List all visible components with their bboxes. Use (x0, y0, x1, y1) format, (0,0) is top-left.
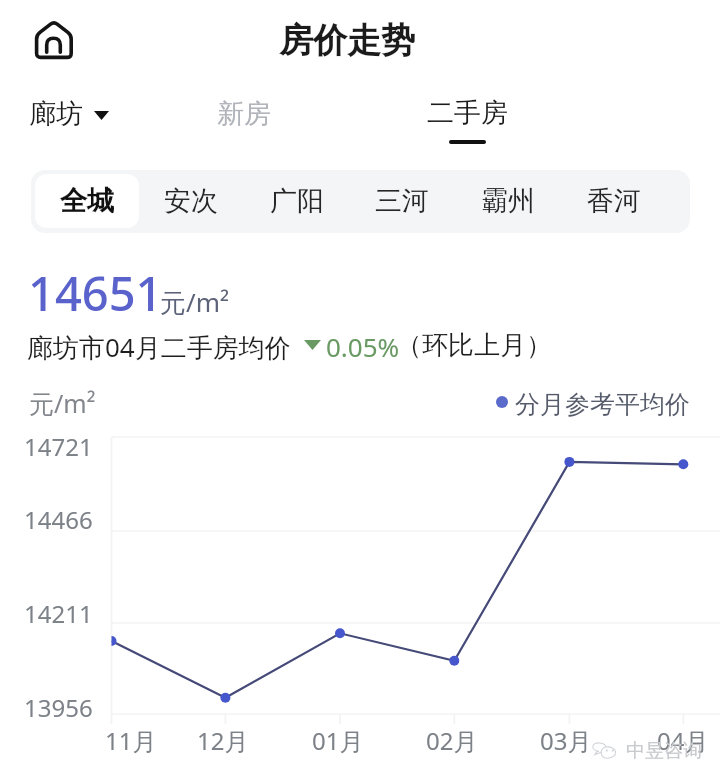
staticText: 房价走势 (279, 19, 415, 62)
staticText: 全城 (60, 184, 114, 218)
staticText: 分月参考平均价 (515, 389, 690, 420)
staticText: 二手房 (427, 96, 508, 130)
staticText: 安次 (164, 184, 218, 218)
staticText: 廊坊市04月二手房均价 (27, 329, 291, 365)
button[interactable]: 广阳 (245, 174, 349, 228)
staticText: 13956 (24, 691, 93, 724)
staticText: 广阳 (270, 184, 324, 218)
staticText: 元/m² (160, 284, 230, 320)
staticText: 中昱咨询 (626, 739, 702, 763)
staticText: 12月 (197, 724, 249, 757)
staticText: 香河 (587, 184, 641, 218)
button[interactable]: Home (18, 4, 90, 76)
button[interactable]: 新房 (217, 96, 277, 146)
staticText: 廊坊 (29, 97, 83, 131)
staticText: （环比上月） (396, 329, 552, 362)
staticText: 04月 (657, 724, 709, 757)
button[interactable]: 廊坊 (29, 96, 111, 146)
staticText: 03月 (540, 724, 592, 757)
staticText: 0.05% (326, 329, 400, 364)
staticText: 14651 (28, 261, 163, 325)
staticText: 02月 (426, 724, 478, 757)
staticText: 元/m² (29, 386, 96, 420)
staticText: 01月 (312, 724, 364, 757)
staticText: 14721 (24, 430, 93, 463)
button[interactable]: 香河 (562, 174, 666, 228)
staticText: 11月 (105, 724, 157, 757)
staticText: 三河 (375, 184, 429, 218)
button[interactable]: 二手房 (427, 96, 527, 148)
staticText: 14466 (24, 503, 93, 536)
button[interactable]: 三河 (350, 174, 454, 228)
button[interactable]: 安次 (139, 174, 243, 228)
button[interactable]: 霸州 (456, 174, 560, 228)
staticText: 新房 (217, 97, 271, 131)
button[interactable]: 全城 (35, 174, 139, 228)
staticText: 霸州 (481, 184, 535, 218)
staticText: 14211 (24, 597, 93, 630)
